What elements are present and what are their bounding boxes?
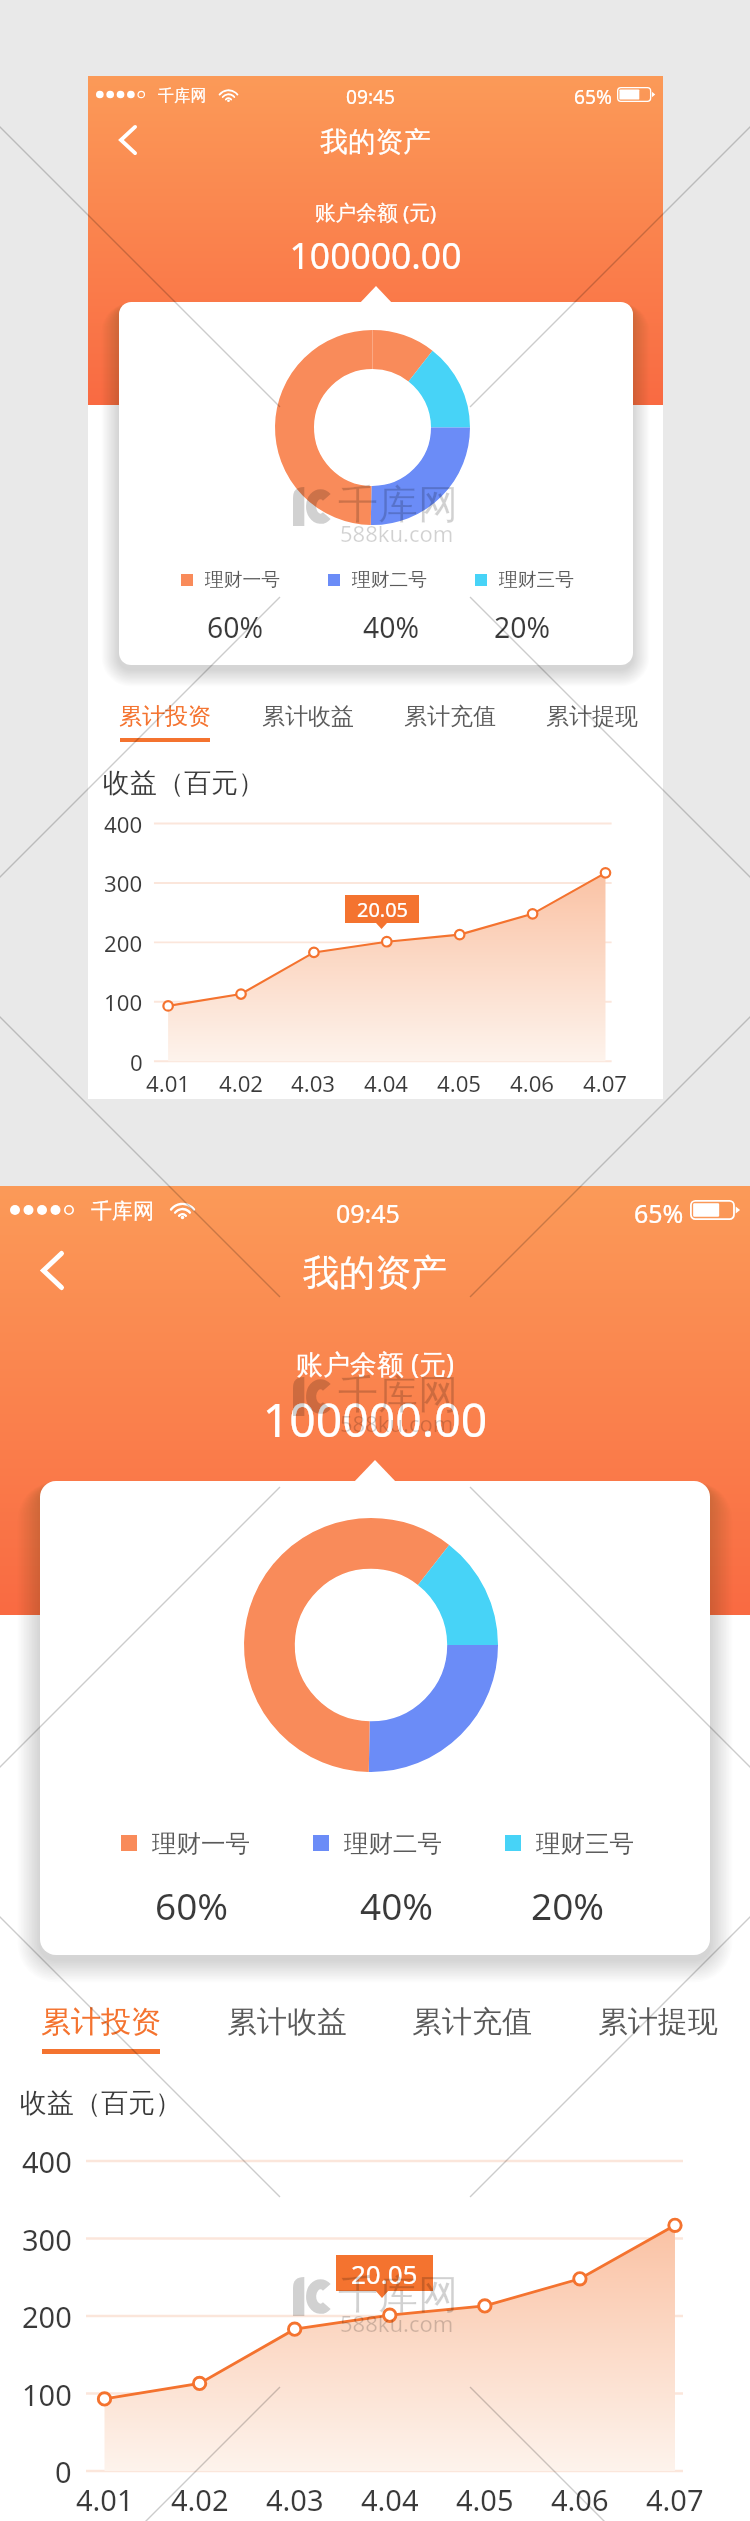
button[interactable]: 累计投资	[23, 1992, 179, 2066]
staticText: 累计投资	[23, 2003, 179, 2041]
staticText: 理财二号	[352, 568, 428, 591]
staticText: 200	[22, 2297, 72, 2335]
staticText: 40%	[360, 1880, 434, 1922]
button[interactable]: Back	[22, 1232, 82, 1308]
button[interactable]: 理财二号	[328, 568, 428, 591]
staticText: 300	[22, 2220, 72, 2258]
staticText: 4.02	[171, 2480, 229, 2519]
staticText: 账户余额 (元)	[88, 198, 663, 226]
staticText: 100000.00	[88, 231, 663, 279]
staticText: 千库网	[158, 85, 207, 105]
staticText: 4.07	[583, 1068, 628, 1098]
staticText: 千库网	[91, 1198, 154, 1224]
staticText: 累计充值	[390, 702, 510, 731]
staticText: 我的资产	[0, 1250, 750, 1295]
staticText: 100	[104, 987, 143, 1016]
staticText: 20.05	[351, 2256, 418, 2291]
staticText: 09:45	[336, 1196, 400, 1230]
staticText: 100	[22, 2375, 72, 2413]
staticText: 我的资产	[88, 124, 663, 159]
staticText: 4.05	[437, 1068, 482, 1098]
staticText: 累计收益	[209, 2003, 365, 2041]
staticText: 588ku.com	[340, 2308, 454, 2338]
staticText: 收益（百元）	[103, 766, 265, 800]
staticText: 累计收益	[248, 702, 368, 731]
button[interactable]: 理财一号	[181, 568, 281, 591]
staticText: 200	[104, 928, 143, 957]
button[interactable]: 理财二号	[313, 1828, 442, 1858]
button[interactable]: 累计提现	[580, 1992, 736, 2066]
button[interactable]: 累计提现	[532, 694, 652, 751]
staticText: 4.07	[646, 2480, 704, 2519]
staticText: 累计提现	[532, 702, 652, 731]
staticText: 40%	[363, 608, 420, 640]
staticText: 4.06	[551, 2480, 609, 2519]
staticText: 588ku.com	[340, 1408, 454, 1438]
staticText: 4.03	[291, 1068, 336, 1098]
staticText: 4.04	[361, 2480, 419, 2519]
button[interactable]: 理财一号	[121, 1828, 250, 1858]
button[interactable]: 累计充值	[394, 1992, 550, 2066]
button[interactable]: 累计收益	[248, 694, 368, 751]
staticText: 累计提现	[580, 2003, 736, 2041]
button[interactable]: Back	[105, 111, 151, 169]
staticText: 4.01	[146, 1068, 191, 1098]
staticText: 588ku.com	[340, 518, 454, 548]
staticText: 20%	[494, 608, 551, 640]
staticText: 09:45	[346, 84, 395, 110]
button[interactable]: 累计收益	[209, 1992, 365, 2066]
button[interactable]: 累计投资	[105, 694, 225, 751]
staticText: 千库网	[338, 2269, 458, 2319]
staticText: 4.01	[76, 2480, 134, 2519]
staticText: 4.03	[266, 2480, 324, 2519]
staticText: 4.06	[510, 1068, 555, 1098]
button[interactable]: 理财三号	[475, 568, 575, 591]
staticText: 4.05	[456, 2480, 514, 2519]
staticText: 累计投资	[105, 702, 225, 731]
staticText: 60%	[207, 608, 264, 640]
staticText: 300	[104, 868, 143, 897]
staticText: 100000.00	[0, 1388, 750, 1451]
staticText: 累计充值	[394, 2003, 550, 2041]
staticText: 20.05	[357, 896, 408, 923]
staticText: 理财三号	[536, 1828, 634, 1858]
staticText: 65%	[634, 1196, 684, 1230]
staticText: 理财三号	[499, 568, 575, 591]
staticText: 千库网	[338, 1369, 458, 1419]
button[interactable]: 理财三号	[505, 1828, 634, 1858]
staticText: 4.04	[364, 1068, 409, 1098]
staticText: 65%	[574, 84, 612, 110]
staticText: 理财一号	[205, 568, 281, 591]
staticText: 60%	[155, 1880, 229, 1922]
staticText: 收益（百元）	[20, 2086, 182, 2120]
staticText: 400	[104, 809, 143, 838]
staticText: 理财二号	[344, 1828, 442, 1858]
staticText: 4.02	[219, 1068, 264, 1098]
staticText: 千库网	[338, 479, 458, 529]
staticText: 0	[55, 2452, 72, 2490]
button[interactable]: 累计充值	[390, 694, 510, 751]
staticText: 400	[22, 2142, 72, 2180]
staticText: 0	[130, 1047, 143, 1076]
staticText: 账户余额 (元)	[0, 1345, 750, 1382]
staticText: 20%	[531, 1880, 605, 1922]
staticText: 理财一号	[152, 1828, 250, 1858]
